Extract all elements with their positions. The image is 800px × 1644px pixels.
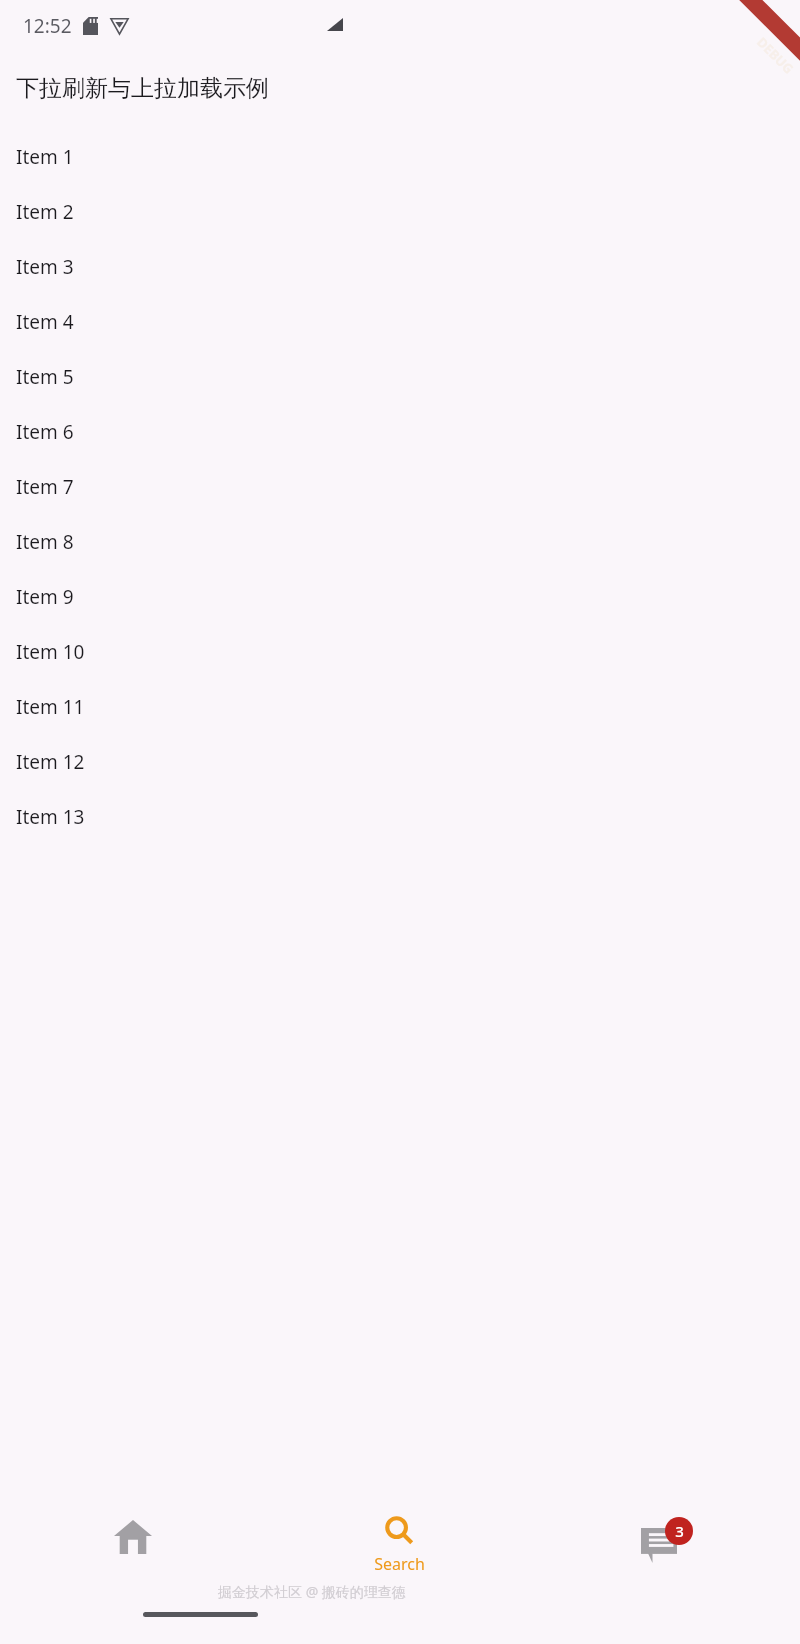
staticText: Item 8 [16,529,74,555]
staticText: Item 6 [16,419,74,445]
button[interactable]: Messages, 3 unread [533,1496,800,1582]
staticText: Item 5 [16,364,74,390]
staticText: Item 11 [16,694,85,720]
button[interactable]: Item 10 [0,624,800,679]
button[interactable]: Item 1 [0,129,800,184]
button[interactable]: Item 2 [0,184,800,239]
staticText: Item 7 [16,474,74,500]
button[interactable]: Item 12 [0,734,800,789]
staticText: Item 1 [16,144,74,170]
staticText: Item 3 [16,254,74,280]
button[interactable]: Item 8 [0,514,800,569]
button[interactable]: Item 9 [0,569,800,624]
button[interactable]: Home [0,1496,266,1582]
staticText: 3 [675,1521,684,1541]
button[interactable]: Item 3 [0,239,800,294]
staticText: Item 9 [16,584,74,610]
staticText: Item 4 [16,309,74,335]
button[interactable]: Item 4 [0,294,800,349]
staticText: Item 12 [16,749,85,775]
staticText: Item 2 [16,199,74,225]
button[interactable]: Search [266,1496,533,1582]
staticText: Item 13 [16,804,85,830]
button[interactable]: Item 11 [0,679,800,734]
staticText: 12:52 [23,13,72,39]
staticText: DEBUG [753,33,798,78]
button[interactable]: Item 7 [0,459,800,514]
staticText: 掘金技术社区 @ 搬砖的理查德 [218,1582,406,1601]
staticText: 下拉刷新与上拉加载示例 [16,74,269,103]
button[interactable]: Item 13 [0,789,800,844]
staticText: Item 10 [16,639,85,665]
button[interactable]: Item 5 [0,349,800,404]
button[interactable]: Item 6 [0,404,800,459]
staticText: Search [374,1553,425,1575]
